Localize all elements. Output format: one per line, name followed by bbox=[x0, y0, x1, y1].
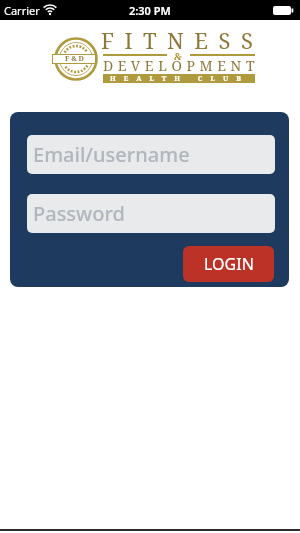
staticText: Carrier bbox=[4, 3, 40, 18]
button[interactable]: Password bbox=[27, 194, 275, 233]
staticText: HEALTH CLUB bbox=[110, 74, 249, 83]
button[interactable]: Email/username bbox=[27, 135, 275, 174]
staticText: 2:30 PM bbox=[129, 3, 171, 18]
staticText: Password bbox=[33, 200, 125, 227]
staticText: F & D bbox=[65, 54, 84, 64]
staticText: & bbox=[174, 50, 183, 60]
staticText: Email/username bbox=[33, 141, 190, 168]
staticText: DEVELOPMENT bbox=[103, 56, 260, 71]
staticText: FITNESS bbox=[101, 25, 264, 49]
button[interactable]: LOGIN bbox=[183, 246, 274, 282]
staticText: LOGIN bbox=[204, 253, 254, 275]
